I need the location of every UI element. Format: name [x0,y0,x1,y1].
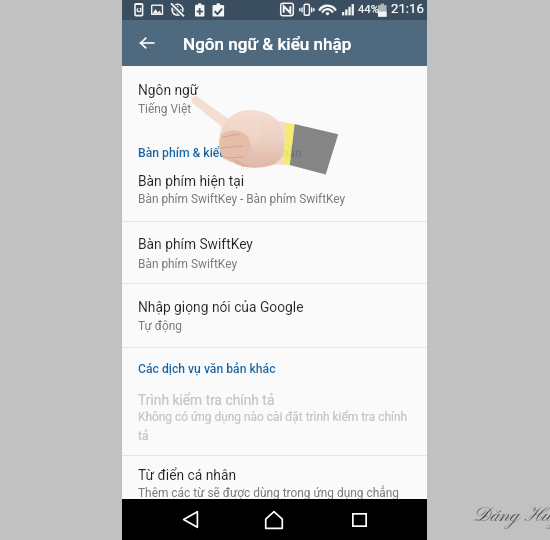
button[interactable]: Recent apps [336,502,382,537]
staticText: Thêm các từ sẽ được dùng trong ứng dụng … [138,486,399,500]
staticText: 21:16 [391,1,424,16]
staticText: Tự động [138,319,182,333]
staticText: Bàn phím & kiểu nhập văn bản [138,146,302,160]
staticText: Đăng Huy [474,503,550,529]
staticText: Bàn phím SwiftKey [138,257,238,271]
button[interactable] [122,456,427,500]
staticText: Bàn phím hiện tại [138,173,245,189]
staticText: Tiếng Việt [138,102,192,116]
staticText: Không có ứng dụng nào cài đặt trình kiểm… [138,410,412,443]
staticText: 44% [358,3,379,16]
button[interactable]: Back [167,502,213,537]
staticText: Các dịch vụ văn bản khác [138,362,276,376]
staticText: Trình kiểm tra chính tả [138,392,275,408]
button[interactable] [122,284,427,347]
button[interactable] [122,160,427,221]
button[interactable] [122,377,427,455]
button[interactable] [122,222,427,283]
staticText: Bàn phím SwiftKey [138,236,253,252]
staticText: Bàn phím SwiftKey - Bàn phím SwiftKey [138,192,346,206]
staticText: Từ điển cá nhân [138,467,236,483]
staticText: Ngôn ngữ & kiểu nhập [183,34,352,54]
staticText: Nhập giọng nói của Google [138,299,304,315]
button[interactable]: Home [251,502,297,537]
button[interactable]: Back [130,26,164,60]
staticText: Ngôn ngữ [138,82,199,98]
button[interactable] [122,66,427,121]
